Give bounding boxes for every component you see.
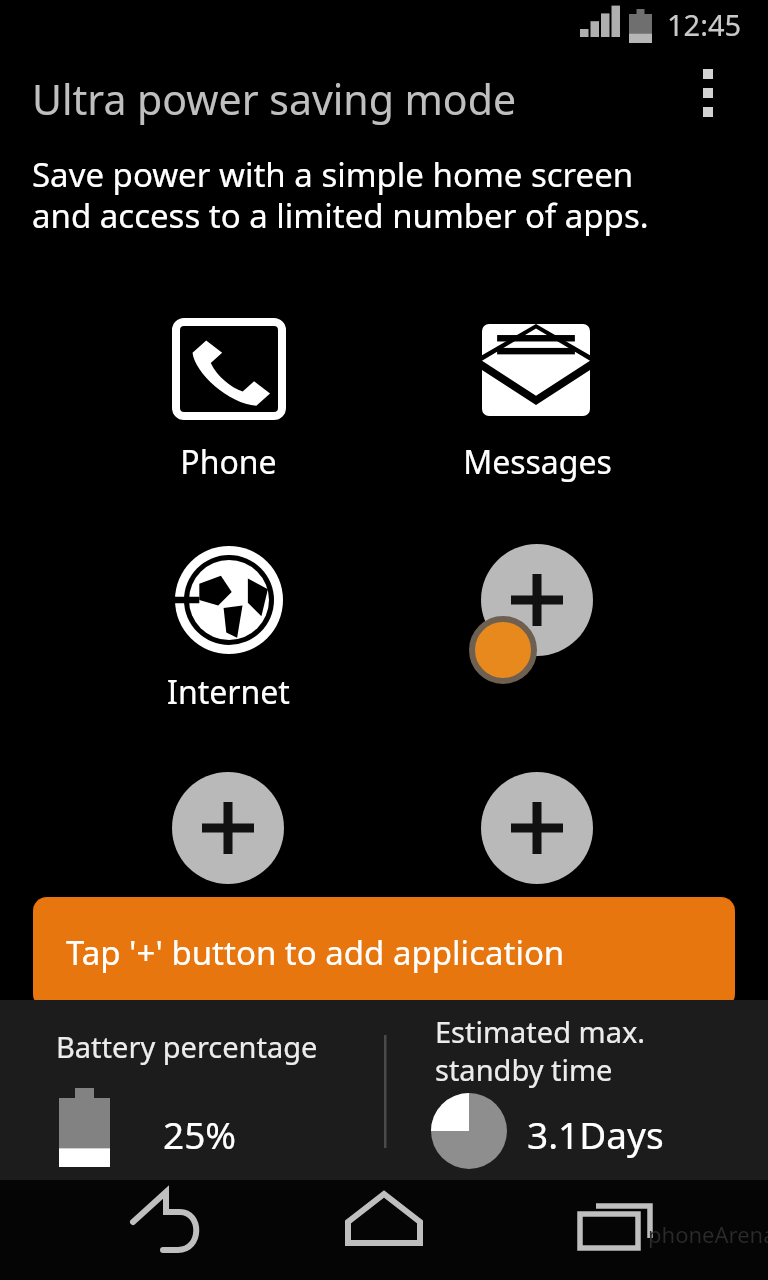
- staticText: Internet: [167, 670, 290, 714]
- staticText: Estimated max. standby time: [435, 1012, 646, 1089]
- button[interactable]: More options: [683, 54, 733, 140]
- staticText: Messages: [463, 440, 612, 484]
- button[interactable]: Add application: [481, 544, 593, 656]
- staticText: 12:45: [667, 5, 742, 44]
- staticText: Phone: [180, 440, 277, 484]
- button[interactable]: [0, 1000, 768, 1180]
- staticText: 25%: [163, 1109, 237, 1159]
- button[interactable]: Tap '+' button to add application: [33, 897, 735, 1008]
- button[interactable]: [123, 534, 333, 722]
- button[interactable]: [123, 306, 333, 488]
- button[interactable]: Recent apps: [540, 1180, 680, 1280]
- button[interactable]: Add application: [172, 772, 284, 884]
- button[interactable]: Back: [88, 1180, 228, 1280]
- button[interactable]: Home: [314, 1180, 454, 1280]
- staticText: Ultra power saving mode: [32, 71, 517, 127]
- staticText: Save power with a simple home screen and…: [32, 152, 649, 238]
- staticText: Tap '+' button to add application: [66, 930, 565, 975]
- button[interactable]: [432, 312, 642, 484]
- staticText: phoneArena: [648, 1219, 768, 1249]
- staticText: 3.1Days: [527, 1109, 664, 1159]
- staticText: Battery percentage: [56, 1027, 318, 1066]
- button[interactable]: Add application: [481, 772, 593, 884]
